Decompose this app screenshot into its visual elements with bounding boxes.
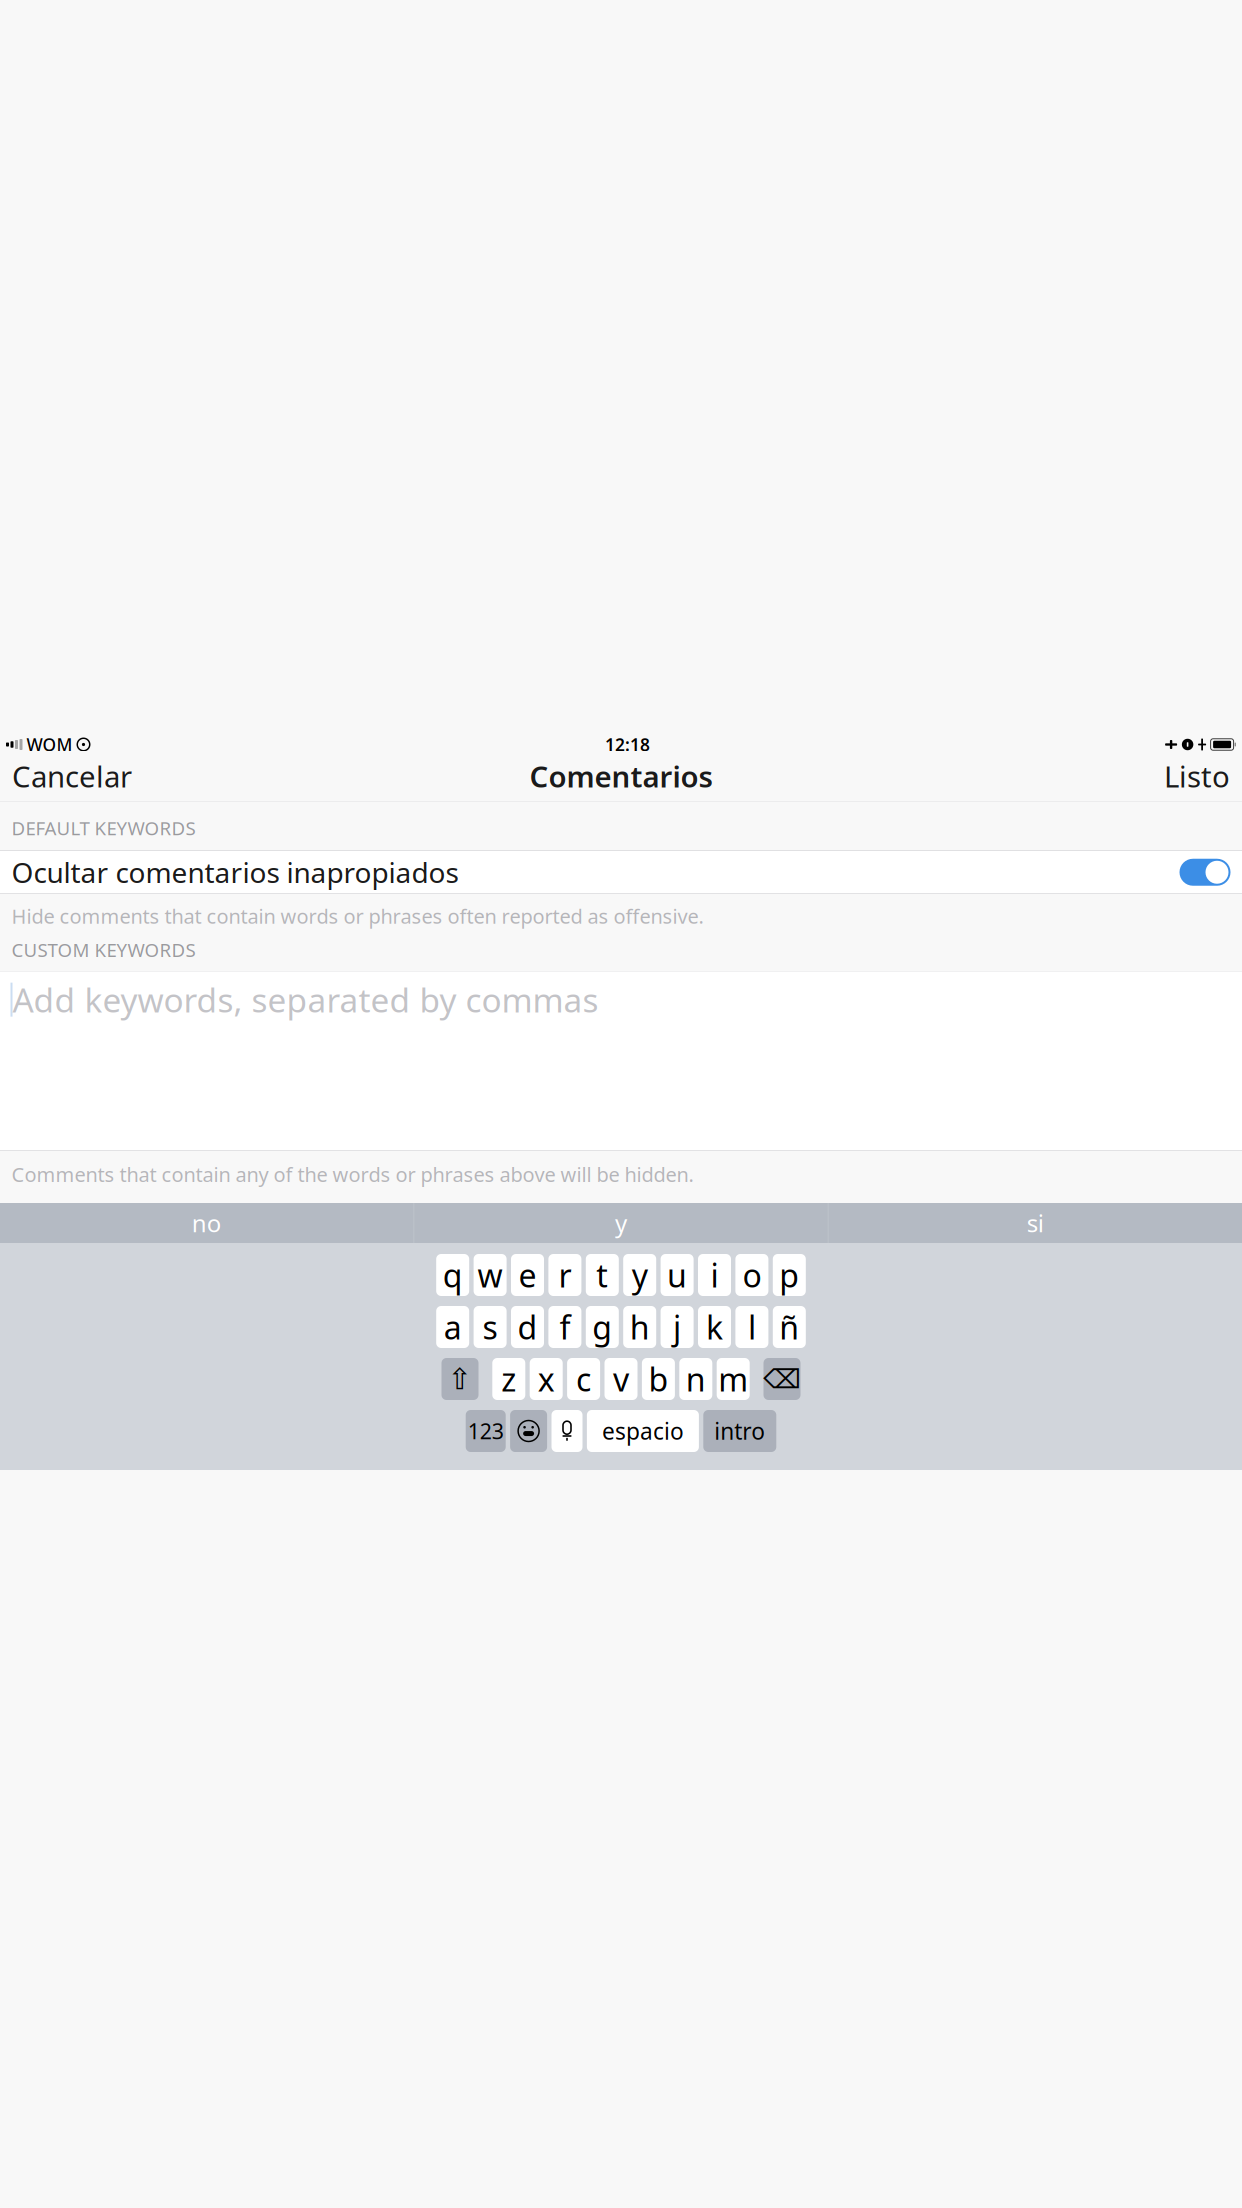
staticText: ⌫ bbox=[763, 1364, 801, 1394]
staticText: b bbox=[648, 1358, 668, 1400]
button[interactable]: q bbox=[436, 1254, 469, 1296]
staticText: d bbox=[517, 1306, 537, 1348]
staticText: c bbox=[576, 1358, 591, 1400]
staticText: Ocultar comentarios inapropiados bbox=[11, 854, 458, 891]
staticText: m bbox=[718, 1358, 748, 1400]
button[interactable]: l bbox=[735, 1306, 768, 1348]
staticText: h bbox=[630, 1306, 650, 1348]
button[interactable]: t bbox=[586, 1254, 619, 1296]
staticText: n bbox=[686, 1358, 706, 1400]
button[interactable]: 123 bbox=[466, 1410, 506, 1452]
staticText: j bbox=[673, 1306, 681, 1348]
button[interactable]: e bbox=[511, 1254, 544, 1296]
button[interactable]: v bbox=[604, 1358, 637, 1400]
staticText: g bbox=[592, 1306, 612, 1348]
button[interactable]: c bbox=[567, 1358, 600, 1400]
button[interactable]: w bbox=[474, 1254, 507, 1296]
button[interactable]: y bbox=[623, 1254, 656, 1296]
staticText: Listo bbox=[1164, 756, 1230, 795]
staticText: p bbox=[779, 1254, 799, 1296]
button[interactable]: si bbox=[828, 1203, 1242, 1243]
button[interactable]: k bbox=[698, 1306, 731, 1348]
button[interactable]: Ocultar comentarios inapropiados bbox=[0, 851, 1242, 893]
button[interactable]: a bbox=[436, 1306, 469, 1348]
button[interactable]: n bbox=[679, 1358, 712, 1400]
staticText: Hide comments that contain words or phra… bbox=[11, 903, 703, 929]
staticText: l bbox=[748, 1306, 756, 1348]
staticText: y bbox=[615, 1207, 627, 1239]
button[interactable]: x bbox=[530, 1358, 563, 1400]
staticText: t bbox=[596, 1254, 608, 1296]
staticText: intro bbox=[714, 1416, 765, 1446]
staticText: ñ bbox=[779, 1306, 799, 1348]
button[interactable]: j bbox=[661, 1306, 694, 1348]
button[interactable]: y bbox=[414, 1203, 828, 1243]
staticText: si bbox=[1027, 1207, 1044, 1239]
staticText: 123 bbox=[468, 1417, 504, 1445]
staticText: ⇧ bbox=[447, 1362, 472, 1396]
staticText: Comentarios bbox=[529, 756, 712, 795]
button[interactable]: Add keywords, separated by commas bbox=[0, 971, 1242, 1150]
button[interactable]: Shift bbox=[441, 1358, 478, 1400]
button[interactable]: no bbox=[0, 1203, 414, 1243]
button[interactable]: Listo bbox=[1152, 753, 1242, 799]
staticText: DEFAULT KEYWORDS bbox=[11, 816, 195, 840]
staticText: f bbox=[559, 1306, 570, 1348]
staticText: z bbox=[501, 1358, 516, 1400]
staticText: i bbox=[710, 1254, 718, 1296]
button[interactable]: intro bbox=[703, 1410, 776, 1452]
staticText: v bbox=[613, 1358, 629, 1400]
staticText: r bbox=[558, 1254, 571, 1296]
button[interactable]: Delete bbox=[763, 1358, 800, 1400]
button[interactable]: espacio bbox=[587, 1410, 699, 1452]
staticText: 12:18 bbox=[605, 733, 650, 756]
button[interactable]: d bbox=[511, 1306, 544, 1348]
button[interactable]: o bbox=[735, 1254, 768, 1296]
staticText: o bbox=[742, 1254, 761, 1296]
staticText: WOM bbox=[26, 733, 72, 756]
button[interactable]: ñ bbox=[773, 1306, 806, 1348]
button[interactable]: s bbox=[474, 1306, 507, 1348]
button[interactable]: g bbox=[586, 1306, 619, 1348]
button[interactable]: f bbox=[548, 1306, 581, 1348]
staticText: a bbox=[444, 1306, 462, 1348]
staticText: x bbox=[538, 1358, 555, 1400]
button[interactable]: z bbox=[492, 1358, 525, 1400]
button[interactable]: r bbox=[548, 1254, 581, 1296]
button[interactable]: Dictation bbox=[551, 1410, 582, 1452]
staticText: k bbox=[706, 1306, 723, 1348]
staticText: CUSTOM KEYWORDS bbox=[11, 937, 195, 962]
staticText: espacio bbox=[602, 1416, 684, 1446]
staticText: u bbox=[667, 1254, 687, 1296]
button[interactable]: i bbox=[698, 1254, 731, 1296]
staticText: Cancelar bbox=[12, 756, 132, 795]
button[interactable]: p bbox=[773, 1254, 806, 1296]
button[interactable]: Emoji keyboard bbox=[510, 1410, 547, 1452]
button[interactable]: h bbox=[623, 1306, 656, 1348]
button[interactable]: Cancelar bbox=[0, 753, 144, 799]
button[interactable]: b bbox=[642, 1358, 675, 1400]
staticText: w bbox=[478, 1254, 503, 1296]
staticText: e bbox=[518, 1254, 536, 1296]
staticText: s bbox=[483, 1306, 498, 1348]
staticText: Comments that contain any of the words o… bbox=[11, 1161, 693, 1188]
staticText: q bbox=[443, 1254, 463, 1296]
staticText: Add keywords, separated by commas bbox=[12, 977, 598, 1022]
button[interactable]: m bbox=[717, 1358, 750, 1400]
staticText: y bbox=[632, 1254, 648, 1296]
staticText: no bbox=[192, 1207, 222, 1239]
button[interactable]: u bbox=[661, 1254, 694, 1296]
